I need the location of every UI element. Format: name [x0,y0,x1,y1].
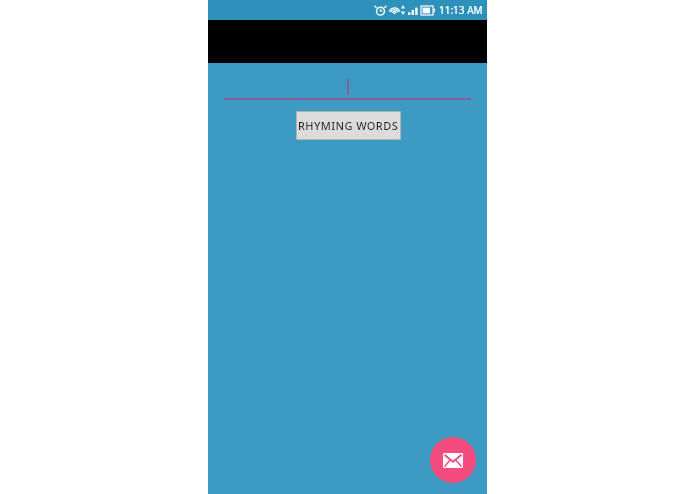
staticText: 11:13 AM [439,3,483,17]
button[interactable] [224,72,471,102]
button[interactable]: Send message [430,437,476,483]
button[interactable]: RHYMING WORDS [296,111,401,140]
staticText: RHYMING WORDS [298,118,399,133]
